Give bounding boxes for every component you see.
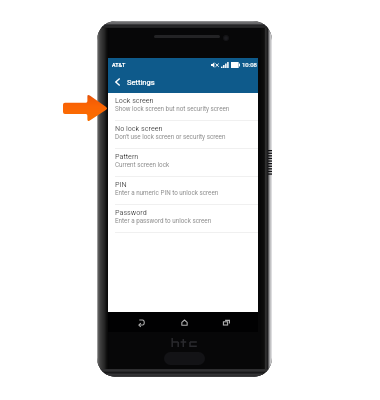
other: Navigate up <box>115 78 120 86</box>
button[interactable]: Back <box>135 317 147 327</box>
staticText: Lock screen <box>115 96 154 104</box>
staticText: Enter a password to unlock screen <box>115 217 212 224</box>
button[interactable]: Recent apps <box>220 317 232 327</box>
button[interactable]: Password <box>108 205 258 233</box>
staticText: Pattern <box>115 152 139 160</box>
button[interactable]: PIN <box>108 177 258 205</box>
staticText: Don't use lock screen or security screen <box>115 133 226 140</box>
button[interactable]: Navigate up <box>108 71 258 93</box>
staticText: Current screen lock <box>115 161 170 168</box>
staticText: Enter a numeric PIN to unlock screen <box>115 189 219 196</box>
staticText: No lock screen <box>115 124 163 132</box>
staticText: Password <box>115 208 147 216</box>
staticText: Show lock screen but not security screen <box>115 105 230 112</box>
other: Volume <box>268 150 272 174</box>
staticText: Settings <box>127 78 155 87</box>
button[interactable]: Home <box>178 317 190 327</box>
staticText: 10:08 <box>242 61 257 68</box>
button[interactable]: Lock screen <box>108 93 258 121</box>
staticText: PIN <box>115 180 127 188</box>
button[interactable]: No lock screen <box>108 121 258 149</box>
button[interactable]: Pattern <box>108 149 258 177</box>
other: Pointer highlighting Lock screen <box>63 94 108 122</box>
staticText: AT&T <box>112 62 126 68</box>
